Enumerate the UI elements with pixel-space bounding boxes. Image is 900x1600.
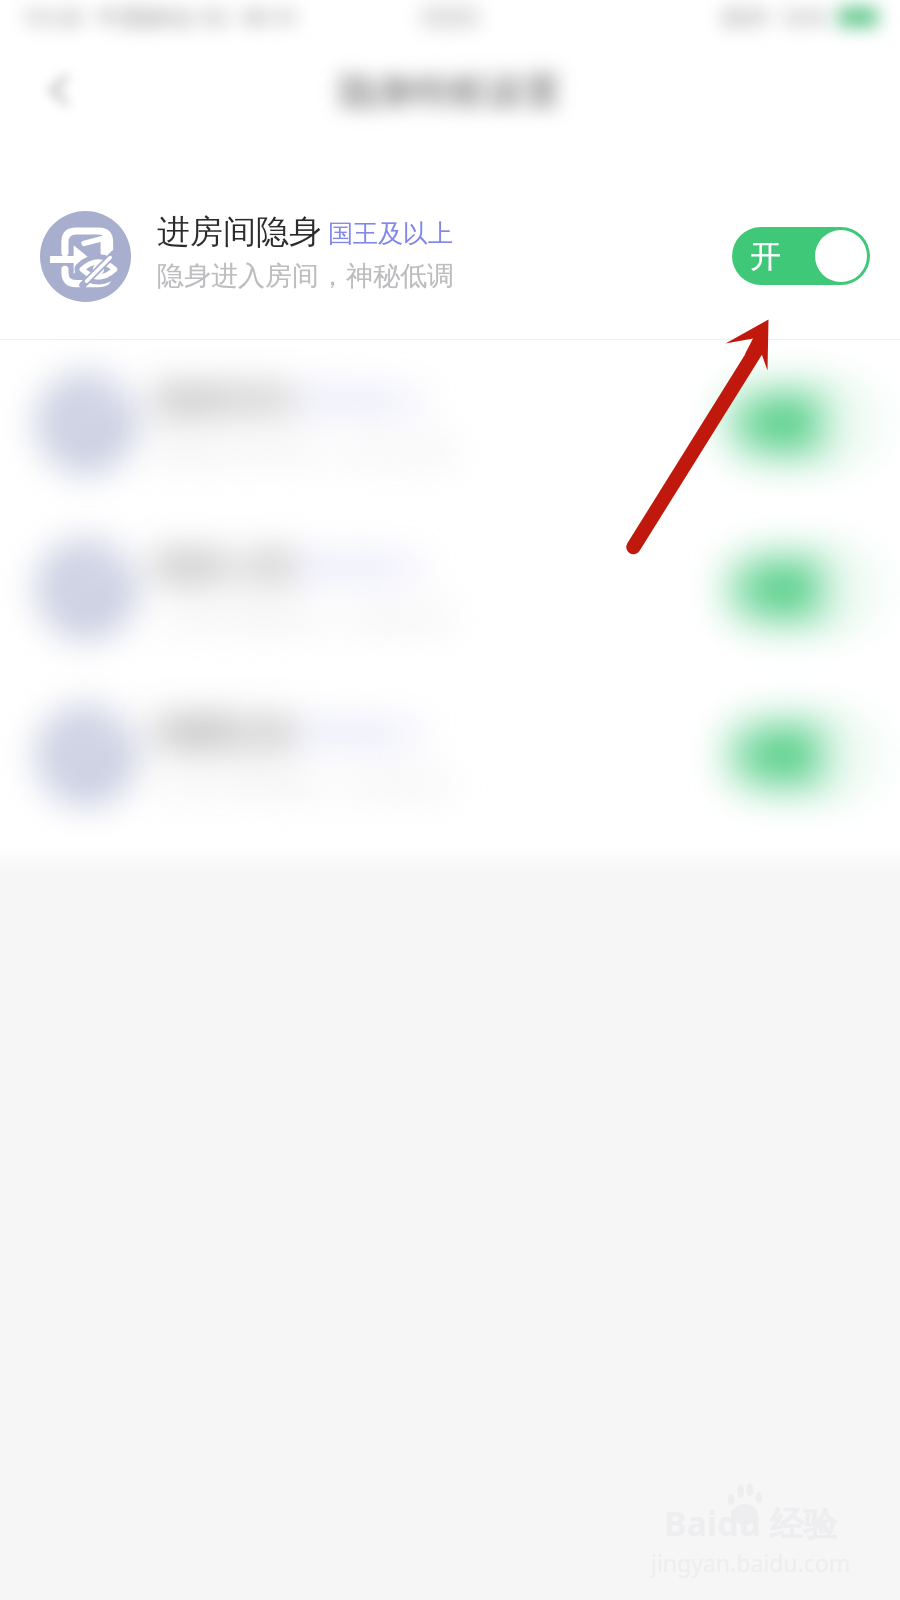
staticText: 隐身进入房间，神秘低调 [157,259,454,293]
staticText: 闹钟 56% [721,0,829,33]
staticText: 进房间隐身 [157,211,322,253]
staticText: 开 [750,570,781,609]
staticText: 开 [750,237,781,276]
staticText: 国王及以上 [328,218,453,249]
staticText: 隐身访问 [157,378,293,421]
staticText: Baidu 经验 [664,1500,838,1546]
button[interactable]: Back [36,66,84,114]
button[interactable]: Toggle [732,560,870,618]
button[interactable]: Toggle [732,227,870,285]
button[interactable]: 隐藏足迹 [0,672,900,838]
button[interactable]: 隐身上线 [0,506,900,672]
button[interactable]: 隐身访问 [0,340,900,506]
staticText: 隐身特权设置 [339,68,561,115]
staticText: 隐藏足迹 [157,710,293,753]
staticText: 10:26 中国移动 5G Wi-Fi [22,0,297,33]
button[interactable]: Toggle [732,394,870,452]
staticText: 隐身上线 [157,544,293,587]
button[interactable]: Toggle [732,726,870,784]
button[interactable]: 进房间隐身 [0,173,900,339]
staticText: 开 [750,404,781,443]
staticText: 开 [750,736,781,775]
